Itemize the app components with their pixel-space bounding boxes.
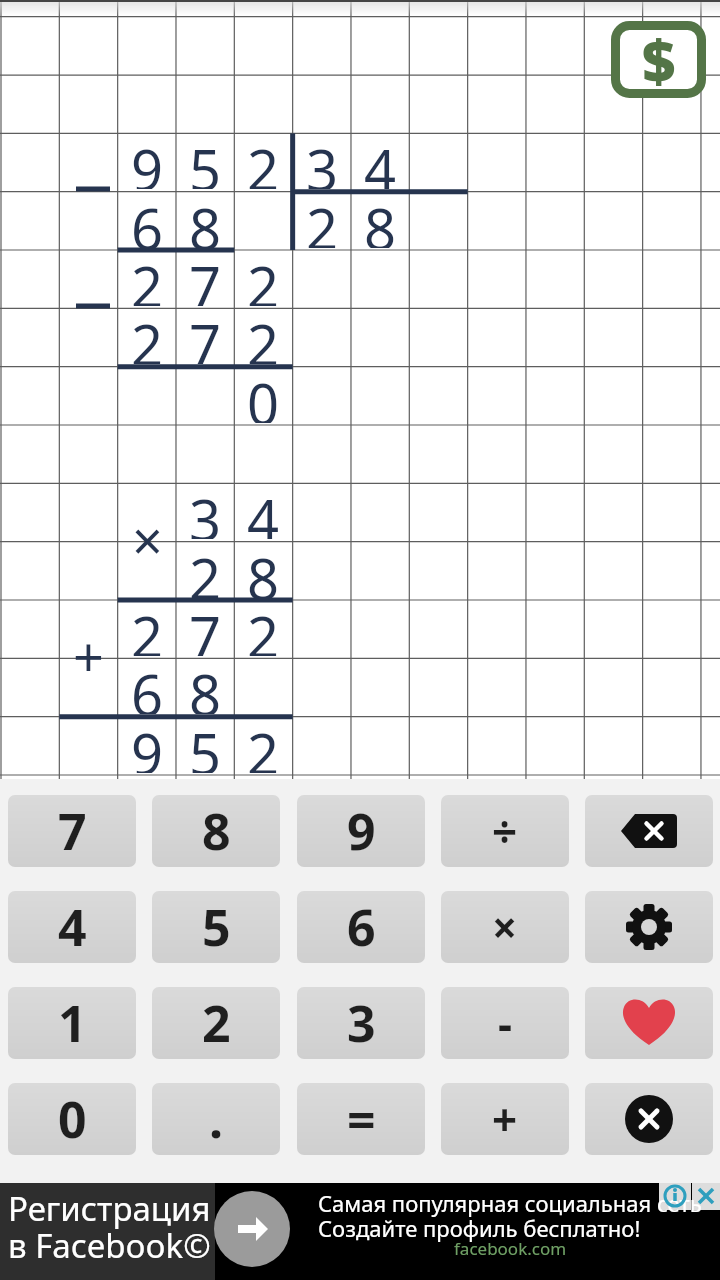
staticText: + <box>492 1089 518 1149</box>
staticText: 2 <box>202 989 231 1057</box>
staticText: 2 <box>247 598 280 656</box>
staticText: 7 <box>189 248 222 306</box>
staticText: 9 <box>347 797 376 865</box>
button[interactable]: 2 <box>152 987 280 1059</box>
staticText: 6 <box>131 656 164 714</box>
staticText: = <box>347 1085 376 1153</box>
staticText: 6 <box>131 190 164 248</box>
button[interactable]: 1 <box>8 987 136 1059</box>
staticText: Регистрация в Facebook© <box>8 1186 211 1268</box>
button[interactable]: $ <box>611 21 706 98</box>
button[interactable]: × <box>441 891 569 963</box>
staticText: 9 <box>131 715 164 773</box>
button[interactable] <box>585 987 713 1059</box>
staticText: $ <box>642 21 676 98</box>
staticText: 2 <box>247 715 280 773</box>
staticText: 4 <box>58 893 87 961</box>
button[interactable]: . <box>152 1083 280 1155</box>
staticText: 1 <box>58 989 87 1057</box>
staticText: 2 <box>131 306 164 364</box>
button[interactable]: 6 <box>297 891 425 963</box>
staticText: 0 <box>247 365 280 423</box>
button[interactable]: 4 <box>8 891 136 963</box>
staticText: 4 <box>247 481 280 539</box>
staticText: 7 <box>189 306 222 364</box>
button[interactable]: = <box>297 1083 425 1155</box>
staticText: 2 <box>306 190 339 248</box>
button[interactable]: 9 <box>297 795 425 867</box>
button[interactable]: 7 <box>8 795 136 867</box>
staticText: 6 <box>347 893 376 961</box>
staticText: ÷ <box>492 801 518 861</box>
button[interactable]: 0 <box>8 1083 136 1155</box>
staticText: 5 <box>202 893 231 961</box>
button[interactable] <box>585 1083 713 1155</box>
staticText: 5 <box>189 715 222 773</box>
button[interactable]: 5 <box>152 891 280 963</box>
staticText: 0 <box>58 1085 87 1153</box>
button[interactable]: 8 <box>152 795 280 867</box>
staticText: . <box>209 1085 224 1153</box>
staticText: 2 <box>131 248 164 306</box>
staticText: 2 <box>189 540 222 598</box>
staticText: × <box>492 897 518 957</box>
staticText: 7 <box>58 797 87 865</box>
button[interactable]: 3 <box>297 987 425 1059</box>
staticText: 2 <box>247 306 280 364</box>
button[interactable]: ÷ <box>441 795 569 867</box>
staticText: 2 <box>247 131 280 189</box>
staticText: 4 <box>364 131 397 189</box>
button[interactable] <box>585 795 713 867</box>
staticText: facebook.com <box>454 1237 567 1260</box>
button[interactable]: + <box>441 1083 569 1155</box>
staticText: 8 <box>189 190 222 248</box>
button[interactable] <box>585 891 713 963</box>
staticText: 2 <box>131 598 164 656</box>
staticText: 8 <box>247 540 280 598</box>
staticText: 3 <box>189 481 222 539</box>
staticText: 8 <box>364 190 397 248</box>
staticText: 2 <box>247 248 280 306</box>
staticText: 5 <box>189 131 222 189</box>
button[interactable]: Регистрация в Facebook© <box>0 1183 720 1280</box>
staticText: 9 <box>131 131 164 189</box>
staticText: - <box>498 993 513 1053</box>
staticText: + <box>73 619 104 677</box>
button[interactable]: - <box>441 987 569 1059</box>
staticText: × <box>132 503 163 561</box>
staticText: 7 <box>189 598 222 656</box>
staticText: 8 <box>202 797 231 865</box>
staticText: 3 <box>306 131 339 189</box>
staticText: Самая популярная социальная сеть Создайт… <box>318 1188 702 1243</box>
staticText: 3 <box>347 989 376 1057</box>
staticText: 8 <box>189 656 222 714</box>
